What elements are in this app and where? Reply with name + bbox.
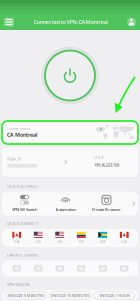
staticText: 199.36.223.150 xyxy=(94,162,119,167)
button[interactable]: SNOOZE 15 MINUTES xyxy=(49,292,91,299)
staticText: VPN SNOOZE xyxy=(7,282,30,287)
button[interactable]: SNOOZE 5 MINUTES xyxy=(5,292,47,299)
staticText: CA Montreal xyxy=(7,131,38,138)
staticText: SNOOZE 5 MINUTES xyxy=(8,293,44,298)
staticText: Public IP xyxy=(7,156,21,161)
button[interactable]: CA xyxy=(113,232,135,244)
staticText: CA xyxy=(14,239,20,244)
staticText: CURRENT REGION xyxy=(7,127,30,130)
button[interactable]: Favorite server xyxy=(92,263,113,273)
button[interactable]: Favorite server xyxy=(113,263,135,273)
button[interactable]: Automation xyxy=(45,192,86,214)
button[interactable]: Favorite server xyxy=(70,263,92,273)
button[interactable]: Disconnect VPN xyxy=(41,46,99,104)
staticText: VPN Kill Switch xyxy=(12,207,37,212)
button[interactable]: SNOOZE 1 HOUR xyxy=(93,292,135,299)
button[interactable]: Private Browser xyxy=(86,192,127,214)
staticText: US xyxy=(57,239,62,244)
staticText: Connected to VPN: CA Montreal xyxy=(33,18,107,26)
button[interactable]: US xyxy=(49,232,70,244)
button[interactable]: Account xyxy=(123,14,140,30)
staticText: CO xyxy=(79,239,84,244)
staticText: US xyxy=(36,239,41,244)
button[interactable]: Favorite server xyxy=(49,263,70,273)
button[interactable]: BS xyxy=(92,232,113,244)
button[interactable]: VPN Kill Switch xyxy=(4,192,45,214)
staticText: QUICK CONNECT xyxy=(7,221,38,226)
button[interactable]: Menu xyxy=(0,14,18,30)
staticText: QUICK SETTINGS xyxy=(7,183,37,189)
staticText: VPN IP xyxy=(94,156,104,160)
button[interactable]: Favorite server xyxy=(6,263,27,273)
button[interactable]: CA xyxy=(6,232,27,244)
staticText: SNOOZE 15 MINUTES xyxy=(51,293,89,298)
staticText: BS xyxy=(100,239,105,244)
staticText: CA xyxy=(121,239,127,244)
staticText: Private Browser xyxy=(92,207,121,212)
button[interactable]: Favorite server xyxy=(27,263,49,273)
staticText: FAVORITE SERVERS xyxy=(7,252,38,258)
staticText: Automation xyxy=(55,207,75,212)
staticText: SNOOZE 1 HOUR xyxy=(99,293,129,298)
button[interactable]: US xyxy=(27,232,49,244)
button[interactable]: CO xyxy=(70,232,92,244)
